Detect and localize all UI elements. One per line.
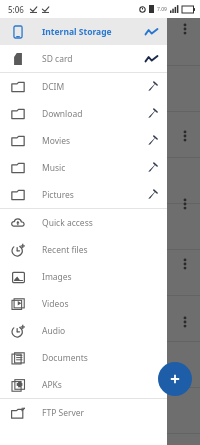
- button[interactable]: Documents: [0, 344, 167, 371]
- button[interactable]: Internal Storage: [0, 18, 167, 45]
- button[interactable]: APKs: [0, 371, 167, 398]
- staticText: FTP Server: [42, 407, 85, 419]
- staticText: Recent files: [42, 244, 88, 256]
- button[interactable]: Recent files: [0, 236, 167, 263]
- staticText: Download: [42, 108, 83, 120]
- button[interactable]: Add: [158, 362, 192, 396]
- staticText: Quick access: [42, 217, 93, 229]
- button[interactable]: FTP Server: [0, 399, 167, 426]
- staticText: Videos: [42, 298, 69, 310]
- button[interactable]: Audio: [0, 317, 167, 344]
- staticText: 7.09: [157, 6, 167, 13]
- button[interactable]: Music: [0, 154, 167, 181]
- staticText: Music: [42, 162, 66, 174]
- button[interactable]: Quick access: [0, 209, 167, 236]
- staticText: APKs: [42, 379, 62, 391]
- button[interactable]: Download: [0, 100, 167, 127]
- staticText: Images: [42, 271, 72, 283]
- button[interactable]: Images: [0, 263, 167, 290]
- staticText: Documents: [42, 352, 88, 364]
- staticText: Movies: [42, 135, 71, 147]
- staticText: 5:06: [8, 4, 24, 15]
- button[interactable]: SD card: [0, 45, 167, 72]
- staticText: Internal Storage: [42, 26, 112, 38]
- button[interactable]: Movies: [0, 127, 167, 154]
- staticText: Pictures: [42, 189, 74, 201]
- button[interactable]: DCIM: [0, 73, 167, 100]
- staticText: DCIM: [42, 81, 65, 93]
- staticText: SD card: [42, 53, 73, 65]
- staticText: Audio: [42, 325, 66, 337]
- button[interactable]: Pictures: [0, 181, 167, 208]
- button[interactable]: Videos: [0, 290, 167, 317]
